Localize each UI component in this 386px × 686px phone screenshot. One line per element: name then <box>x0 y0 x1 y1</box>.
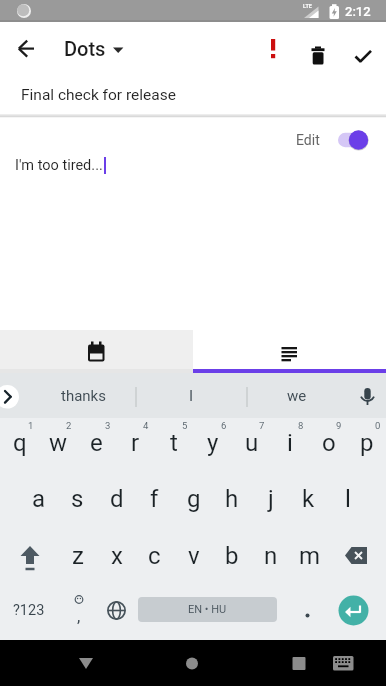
button[interactable]: q <box>0 415 39 470</box>
button[interactable]: v <box>174 528 213 583</box>
button[interactable] <box>338 595 369 626</box>
button[interactable]: m <box>290 528 329 583</box>
button[interactable] <box>257 30 289 70</box>
button[interactable]: Dots <box>60 32 130 64</box>
staticText: u <box>245 429 259 457</box>
staticText: 1 <box>28 420 34 431</box>
button[interactable]: c <box>135 528 174 583</box>
button[interactable]: b <box>212 528 251 583</box>
staticText: I'm too tired... <box>15 157 103 174</box>
button[interactable] <box>98 583 136 638</box>
staticText: 2 <box>66 420 72 431</box>
staticText: 8 <box>298 420 304 431</box>
button[interactable] <box>170 641 214 685</box>
staticText: Dots <box>64 37 106 60</box>
button[interactable]: w <box>39 415 78 470</box>
staticText: e <box>90 429 103 457</box>
button[interactable]: s <box>58 471 97 526</box>
button[interactable]: o <box>309 415 348 470</box>
button[interactable]: l <box>328 471 367 526</box>
button[interactable]: r <box>116 415 155 470</box>
button[interactable]: g <box>174 471 213 526</box>
button[interactable] <box>346 30 382 70</box>
staticText: q <box>13 429 27 457</box>
staticText: b <box>225 542 239 570</box>
staticText: f <box>150 485 159 513</box>
button[interactable]: ?123 <box>8 583 50 638</box>
staticText: n <box>264 542 278 570</box>
button[interactable] <box>332 534 380 578</box>
button[interactable]: u <box>232 415 271 470</box>
staticText: 5 <box>182 420 188 431</box>
staticText: i <box>287 429 293 457</box>
staticText: v <box>188 542 200 570</box>
staticText: we <box>287 387 307 405</box>
button[interactable]: z <box>58 528 97 583</box>
button[interactable]: a <box>19 471 58 526</box>
button[interactable]: j <box>251 471 290 526</box>
staticText: thanks <box>61 387 106 405</box>
button[interactable]: I <box>136 384 247 408</box>
button[interactable] <box>6 534 54 578</box>
staticText: o <box>322 429 336 457</box>
button[interactable] <box>193 330 386 369</box>
button[interactable]: t <box>154 415 193 470</box>
button[interactable] <box>277 641 321 685</box>
staticText: , <box>77 606 81 626</box>
staticText: EN • HU <box>188 603 227 616</box>
staticText: LTE <box>303 3 312 9</box>
button[interactable]: n <box>251 528 290 583</box>
staticText: 0 <box>375 420 381 431</box>
staticText: 3 <box>105 420 111 431</box>
staticText: ?123 <box>13 602 45 619</box>
staticText: p <box>360 429 374 457</box>
button[interactable] <box>323 641 363 685</box>
button[interactable]: thanks <box>30 384 136 408</box>
staticText: 6 <box>221 420 227 431</box>
staticText: I <box>189 387 194 405</box>
button[interactable] <box>0 330 193 369</box>
button[interactable]: y <box>193 415 232 470</box>
staticText: Edit <box>296 132 320 148</box>
staticText: r <box>131 429 140 457</box>
button[interactable]: i <box>270 415 309 470</box>
button[interactable] <box>288 583 326 638</box>
staticText: j <box>268 485 274 513</box>
button[interactable] <box>302 30 334 70</box>
button[interactable] <box>0 385 20 409</box>
button[interactable]: x <box>97 528 136 583</box>
button[interactable]: we <box>247 384 347 408</box>
staticText: d <box>110 485 124 513</box>
staticText: s <box>71 485 84 513</box>
button[interactable] <box>6 36 46 76</box>
staticText: y <box>207 429 219 457</box>
staticText: 4 <box>143 420 149 431</box>
button[interactable]: d <box>97 471 136 526</box>
button[interactable]: f <box>135 471 174 526</box>
button[interactable]: EN • HU <box>138 597 277 622</box>
staticText: a <box>32 485 46 513</box>
button[interactable]: p <box>347 415 386 470</box>
staticText: h <box>225 485 239 513</box>
staticText: x <box>111 542 123 570</box>
button[interactable]: h <box>212 471 251 526</box>
button[interactable]: e <box>77 415 116 470</box>
staticText: l <box>345 485 351 513</box>
button[interactable] <box>334 126 374 154</box>
staticText: c <box>148 542 161 570</box>
button[interactable]: k <box>289 471 328 526</box>
button[interactable]: , <box>60 583 98 638</box>
staticText: g <box>187 485 201 513</box>
button[interactable] <box>64 641 108 685</box>
staticText: z <box>72 542 84 570</box>
staticText: k <box>302 485 315 513</box>
staticText: t <box>170 429 178 457</box>
staticText: Final check for release <box>21 86 176 104</box>
staticText: m <box>299 542 321 570</box>
staticText: 2:12 <box>345 4 371 19</box>
staticText: 7 <box>259 420 265 431</box>
staticText: 9 <box>336 420 342 431</box>
staticText: w <box>49 429 68 457</box>
